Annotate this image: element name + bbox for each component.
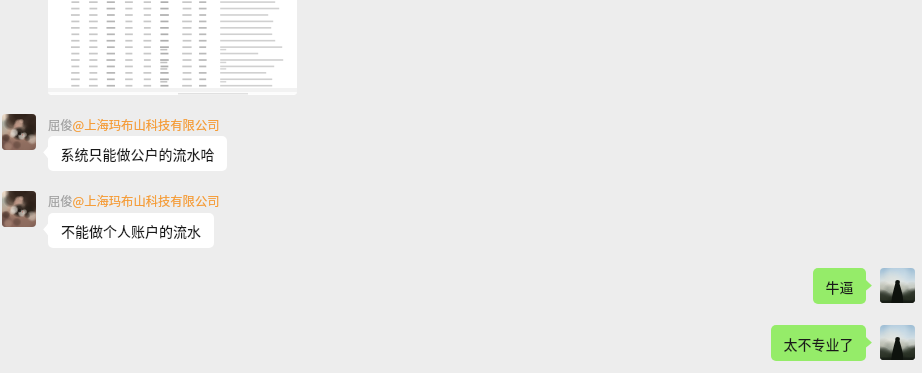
staticText: 太不专业了 bbox=[771, 334, 866, 361]
button[interactable]: 太不专业了 bbox=[771, 325, 866, 361]
staticText: 不能做个人账户的流水 bbox=[48, 221, 214, 248]
button[interactable]: My avatar bbox=[880, 268, 915, 303]
button[interactable]: Avatar of 屈俊 bbox=[2, 114, 36, 150]
button[interactable]: 牛逼 bbox=[813, 268, 866, 304]
button[interactable]: 系统只能做公户的流水哈 bbox=[48, 136, 227, 171]
button[interactable]: Image attachment bbox=[48, 0, 297, 95]
staticText: 牛逼 bbox=[813, 277, 866, 304]
button[interactable]: Avatar of 屈俊 bbox=[2, 191, 36, 227]
staticText: 屈俊@上海玛布山科技有限公司 bbox=[48, 116, 220, 134]
staticText: 屈俊@上海玛布山科技有限公司 bbox=[48, 192, 220, 210]
button[interactable]: 不能做个人账户的流水 bbox=[48, 213, 214, 248]
staticText: 系统只能做公户的流水哈 bbox=[48, 144, 227, 171]
button[interactable]: My avatar bbox=[880, 325, 915, 360]
